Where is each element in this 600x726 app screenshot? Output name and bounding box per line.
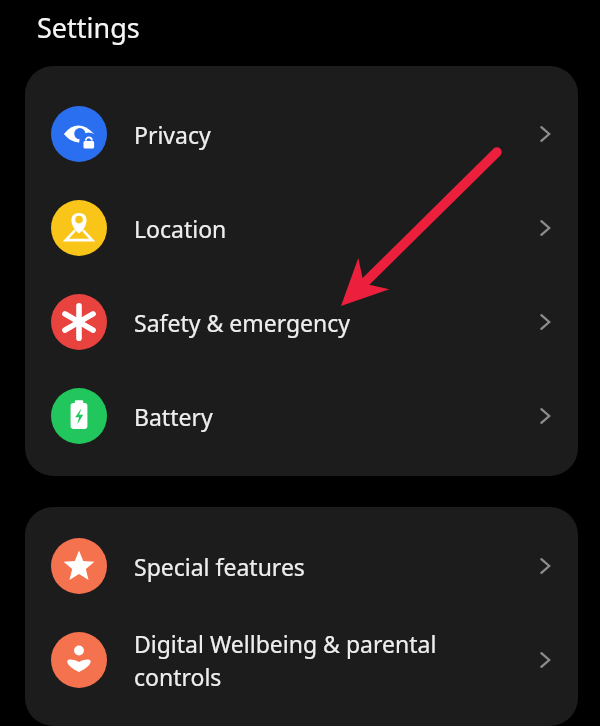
- button[interactable]: Privacy: [25, 87, 578, 181]
- staticText: Battery: [134, 401, 532, 432]
- staticText: Digital Wellbeing & parental controls: [134, 628, 532, 693]
- staticText: Special features: [134, 551, 532, 582]
- staticText: Settings: [37, 9, 140, 46]
- staticText: Safety & emergency: [134, 307, 532, 338]
- button[interactable]: Special features: [25, 519, 578, 613]
- staticText: Privacy: [134, 119, 532, 150]
- button[interactable]: Digital Wellbeing & parental controls: [25, 613, 578, 707]
- staticText: Location: [134, 213, 532, 244]
- button[interactable]: Location: [25, 181, 578, 275]
- button[interactable]: Safety & emergency: [25, 275, 578, 369]
- button[interactable]: Battery: [25, 369, 578, 463]
